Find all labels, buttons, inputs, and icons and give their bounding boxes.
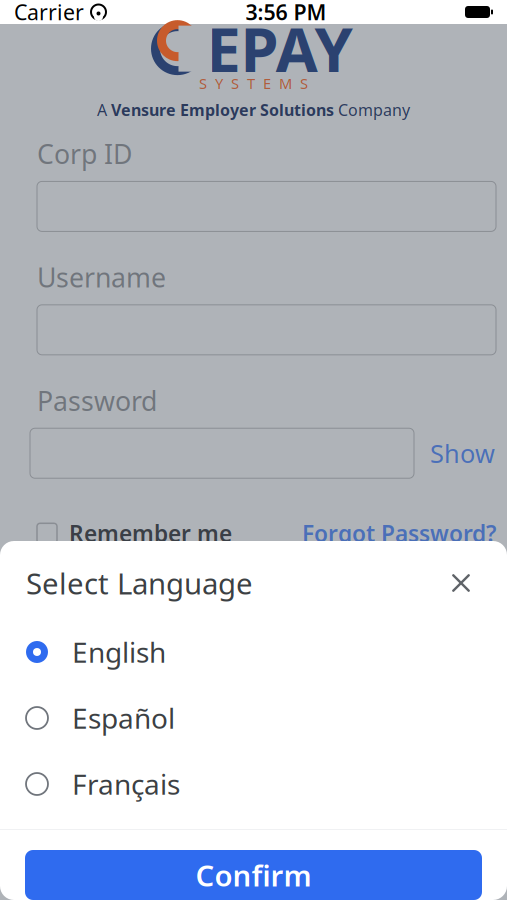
- staticText: Vensure Employer Solutions: [111, 99, 334, 120]
- button[interactable]: Español: [0, 685, 507, 751]
- button[interactable]: English: [0, 619, 507, 685]
- staticText: Company: [334, 99, 410, 120]
- staticText: Confirm: [195, 855, 311, 894]
- staticText: Français: [72, 765, 180, 803]
- staticText: S Y S T E M S: [199, 74, 308, 93]
- staticText: 3:56 PM: [245, 0, 326, 26]
- staticText: A: [97, 99, 111, 120]
- staticText: Carrier: [14, 0, 84, 26]
- staticText: Corp ID: [37, 136, 132, 171]
- button[interactable]: Français: [0, 751, 507, 817]
- button[interactable]: Show: [422, 430, 503, 476]
- staticText: Español: [72, 699, 175, 737]
- button[interactable]: Confirm: [25, 850, 482, 900]
- button[interactable]: Remember me: [37, 512, 232, 554]
- staticText: Username: [37, 259, 166, 295]
- staticText: Password: [37, 383, 157, 418]
- staticText: Forgot Password?: [302, 518, 496, 548]
- button[interactable]: Close: [441, 563, 481, 603]
- staticText: Show: [430, 436, 495, 470]
- staticText: [84, 0, 90, 27]
- staticText: Remember me: [69, 518, 232, 548]
- button[interactable]: Forgot Password?: [302, 512, 496, 554]
- staticText: Select Language: [26, 563, 253, 602]
- staticText: EPAY: [206, 8, 352, 89]
- staticText: English: [72, 633, 166, 671]
